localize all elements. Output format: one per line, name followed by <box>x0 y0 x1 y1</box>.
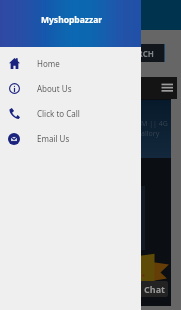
button[interactable]: Menu <box>160 80 174 94</box>
staticText: Myshopbazzar <box>41 14 103 26</box>
button[interactable]: Email Us <box>0 126 141 151</box>
button[interactable]: About Us <box>0 76 141 101</box>
button[interactable]: Home <box>0 51 141 76</box>
button[interactable]: Click to Call <box>0 101 141 126</box>
button[interactable]: SEARCH <box>112 44 165 62</box>
staticText: Chat <box>144 283 165 295</box>
staticText: Click to Call <box>37 108 80 119</box>
staticText: M || 4G <box>141 119 168 129</box>
staticText: allory <box>141 129 160 139</box>
staticText: Email Us <box>37 133 70 144</box>
staticText: About Us <box>37 83 72 94</box>
staticText: SEARCH <box>123 48 154 59</box>
staticText: Home <box>37 58 60 69</box>
button[interactable]: Chat <box>139 281 168 297</box>
